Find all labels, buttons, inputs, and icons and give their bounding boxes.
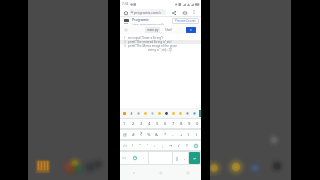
- staticText: :: [154, 143, 156, 148]
- button[interactable]: %: [145, 130, 153, 139]
- button[interactable]: Emoji: [170, 108, 177, 118]
- button[interactable]: 6: [161, 119, 169, 128]
- button[interactable]: /: [175, 141, 183, 150]
- staticText: ': [147, 143, 148, 148]
- button[interactable]: ,: [181, 152, 188, 164]
- button[interactable]: ): [193, 130, 201, 139]
- button[interactable]: Home: [122, 9, 129, 16]
- staticText: %: [147, 132, 151, 138]
- staticText: 1: [124, 36, 126, 40]
- staticText: string is ",str[::-1]): [148, 48, 173, 52]
- button[interactable]: Emoji: [121, 108, 128, 118]
- staticText: 3: [124, 44, 126, 48]
- button[interactable]: #: [129, 130, 137, 139]
- staticText: str=input("Enter a String"): [128, 36, 164, 40]
- button[interactable]: ‖: [173, 152, 181, 164]
- button[interactable]: Emoji: [163, 108, 170, 118]
- staticText: Programiz: [132, 17, 149, 22]
- button[interactable]: -: [169, 130, 177, 139]
- button[interactable]: 4: [145, 119, 153, 128]
- button[interactable]: Emoji: [156, 108, 163, 118]
- staticText: ": [139, 143, 141, 148]
- button[interactable]: 0: [193, 119, 201, 128]
- staticText: (: [188, 132, 190, 138]
- button[interactable]: &: [153, 130, 161, 139]
- button[interactable]: Preview Course: [172, 18, 199, 24]
- button[interactable]: Emoji: [177, 108, 184, 118]
- staticText: /: [178, 143, 180, 148]
- button[interactable]: 3: [137, 119, 145, 128]
- button[interactable]: =\<: [120, 141, 129, 150]
- staticText: =\<: [123, 144, 127, 148]
- button[interactable]: (: [185, 130, 193, 139]
- button[interactable]: ": [136, 141, 143, 150]
- button[interactable]: Shell: [164, 27, 173, 33]
- button[interactable]: programiz.com/c: [129, 9, 166, 15]
- staticText: 5: [156, 121, 159, 127]
- staticText: main.py: [147, 28, 159, 32]
- button[interactable]: main.py: [145, 27, 160, 33]
- button[interactable]: Emoji: [142, 108, 149, 118]
- staticText: 7:34: [122, 2, 129, 6]
- button[interactable]: ?: [183, 141, 191, 150]
- button[interactable]: ≈<: [120, 152, 129, 164]
- button[interactable]: Backspace: [191, 141, 201, 150]
- button[interactable]: Share: [170, 9, 177, 16]
- staticText: Shell: [165, 28, 172, 32]
- staticText: ;: [162, 143, 164, 148]
- button[interactable]: Tabs: [181, 9, 188, 16]
- staticText: print("The entered String is",str): [128, 40, 172, 44]
- staticText: ≈<: [122, 156, 127, 160]
- button[interactable]: ;: [159, 141, 167, 150]
- button[interactable]: 5: [153, 119, 161, 128]
- button[interactable]: ₹: [137, 130, 145, 139]
- button[interactable]: 8: [177, 119, 185, 128]
- button[interactable]: →: [167, 141, 175, 150]
- staticText: ₹: [140, 132, 143, 138]
- button[interactable]: 9: [185, 119, 193, 128]
- staticText: 0: [196, 121, 199, 127]
- button[interactable]: More options: [191, 9, 197, 15]
- button[interactable]: 1: [120, 119, 129, 128]
- button[interactable]: Run code: [186, 27, 196, 33]
- button[interactable]: 2: [129, 119, 137, 128]
- button[interactable]: Emoji: [191, 108, 198, 118]
- staticText: #: [132, 132, 135, 138]
- staticText: .: [143, 155, 145, 161]
- staticText: 3: [140, 121, 143, 127]
- staticText: 8: [180, 121, 183, 127]
- button[interactable]: Enter: [189, 152, 200, 164]
- button[interactable]: @: [120, 130, 129, 139]
- staticText: *: [164, 132, 167, 138]
- button[interactable]: :: [151, 141, 159, 150]
- staticText: 2: [124, 40, 126, 44]
- button[interactable]: Files: [123, 27, 128, 32]
- button[interactable]: Emoji keyboard: [129, 152, 140, 164]
- staticText: →: [169, 143, 173, 148]
- button[interactable]: !: [129, 141, 136, 150]
- button[interactable]: Emoji: [149, 108, 156, 118]
- staticText: programiz.com/c: [134, 10, 162, 15]
- staticText: 6: [164, 121, 167, 127]
- staticText: +: [180, 132, 183, 138]
- staticText: 4: [148, 121, 151, 127]
- button[interactable]: Emoji: [128, 108, 135, 118]
- button[interactable]: 7: [169, 119, 177, 128]
- button[interactable]: ': [143, 141, 151, 150]
- button[interactable]: *: [161, 130, 169, 139]
- staticText: ?: [186, 143, 188, 148]
- staticText: 7: [172, 121, 175, 127]
- staticText: print("The Mirror image of the given: [128, 44, 178, 48]
- button[interactable]: Emoji: [184, 108, 191, 118]
- button[interactable]: Emoji: [135, 108, 142, 118]
- staticText: 2: [132, 121, 135, 127]
- button[interactable]: +: [177, 130, 185, 139]
- staticText: ,: [184, 155, 186, 161]
- staticText: ‖: [176, 156, 179, 161]
- staticText: ): [196, 132, 198, 138]
